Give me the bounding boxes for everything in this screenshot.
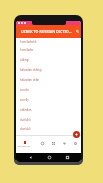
button[interactable]: Home (45, 153, 53, 162)
button[interactable]: duelukli (16, 125, 81, 132)
button[interactable]: DICTIONARY (16, 135, 33, 153)
button[interactable]: Recents (63, 153, 71, 162)
staticText: oldindan (20, 108, 32, 112)
staticText: homilador (20, 48, 34, 52)
button[interactable]: surolin (16, 85, 81, 95)
button[interactable]: Categories (48, 135, 59, 153)
staticText: UZBEK TO RUSSIAN DICTIONARY (21, 29, 73, 34)
button[interactable]: homilador (16, 45, 81, 55)
button[interactable]: surelly (16, 95, 81, 105)
button[interactable]: halvadan oldingi (16, 65, 81, 75)
staticText: halvadan oldingi (20, 68, 42, 72)
staticText: DICTIONARY (18, 145, 31, 148)
button[interactable]: Favourites (59, 135, 70, 153)
button[interactable]: Settings (70, 135, 81, 153)
button[interactable]: Add word (73, 131, 80, 138)
button[interactable]: Back (26, 153, 34, 162)
button[interactable]: homiladorlik (16, 38, 81, 45)
staticText: halvadan oldin (20, 78, 40, 82)
button[interactable]: duelukli (16, 115, 81, 125)
button[interactable]: halvadan oldin (16, 75, 81, 85)
button[interactable]: oldindan (16, 105, 81, 115)
button[interactable]: Search (73, 25, 81, 38)
staticText: surolin (20, 88, 30, 92)
staticText: homiladorlik (20, 40, 37, 44)
staticText: duelukli (20, 118, 31, 122)
staticText: oldingi (20, 58, 30, 62)
button[interactable]: Translate (37, 135, 48, 153)
staticText: duelukli (20, 127, 31, 131)
staticText: surelly (20, 98, 29, 102)
button[interactable]: oldingi (16, 55, 81, 65)
